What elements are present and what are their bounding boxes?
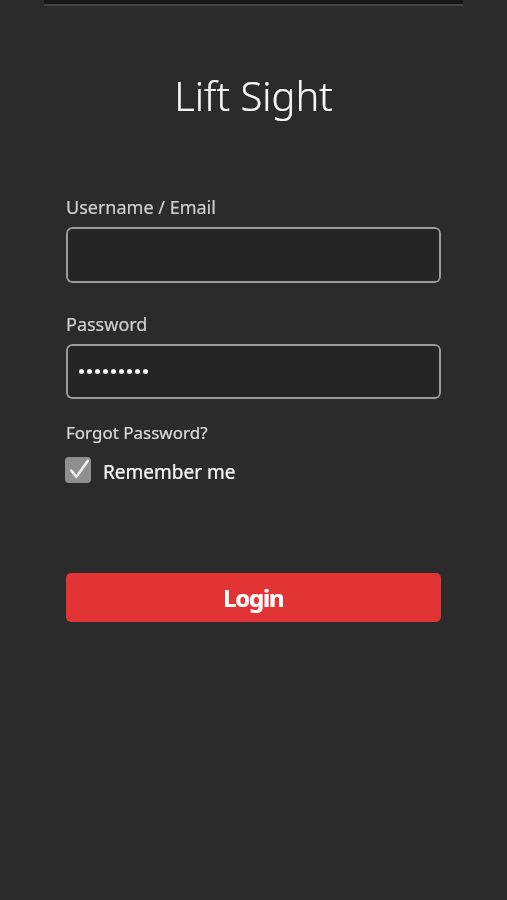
staticText: Login (223, 581, 284, 614)
staticText: Lift Sight (0, 68, 507, 122)
button[interactable] (66, 344, 441, 399)
button[interactable]: Forgot Password? (66, 421, 208, 444)
staticText: Remember me (103, 459, 236, 485)
button[interactable]: Login (66, 573, 441, 622)
staticText: Password (66, 312, 148, 337)
button[interactable]: Remember me (65, 457, 236, 483)
staticText: Username / Email (66, 195, 216, 220)
button[interactable] (66, 227, 441, 283)
